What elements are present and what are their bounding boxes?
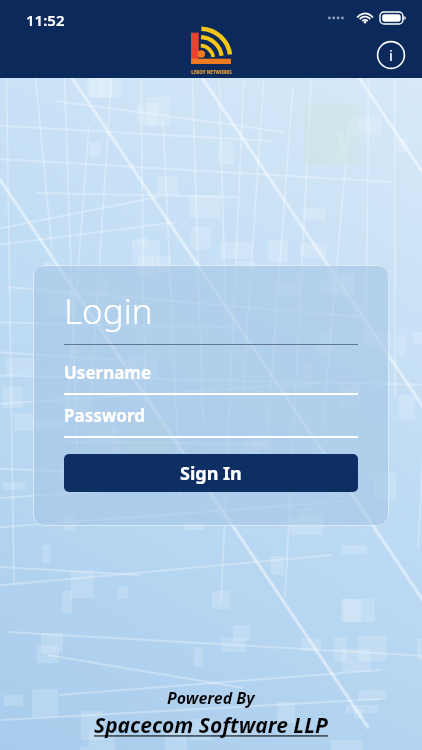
staticText: LEROY NETWORKS (191, 69, 232, 75)
staticText: i (389, 45, 393, 65)
staticText: Spacecom Software LLP (94, 711, 328, 740)
staticText: Username (64, 361, 152, 384)
staticText: Sign In (180, 461, 242, 486)
staticText: Powered By (167, 687, 255, 709)
button[interactable]: Password (64, 404, 358, 438)
staticText: Password (64, 404, 145, 427)
staticText: Login (64, 287, 153, 335)
button[interactable]: Sign In (64, 454, 358, 492)
button[interactable]: Info (376, 40, 406, 70)
button[interactable]: Username (64, 361, 358, 395)
staticText: 11:52 (26, 10, 65, 30)
